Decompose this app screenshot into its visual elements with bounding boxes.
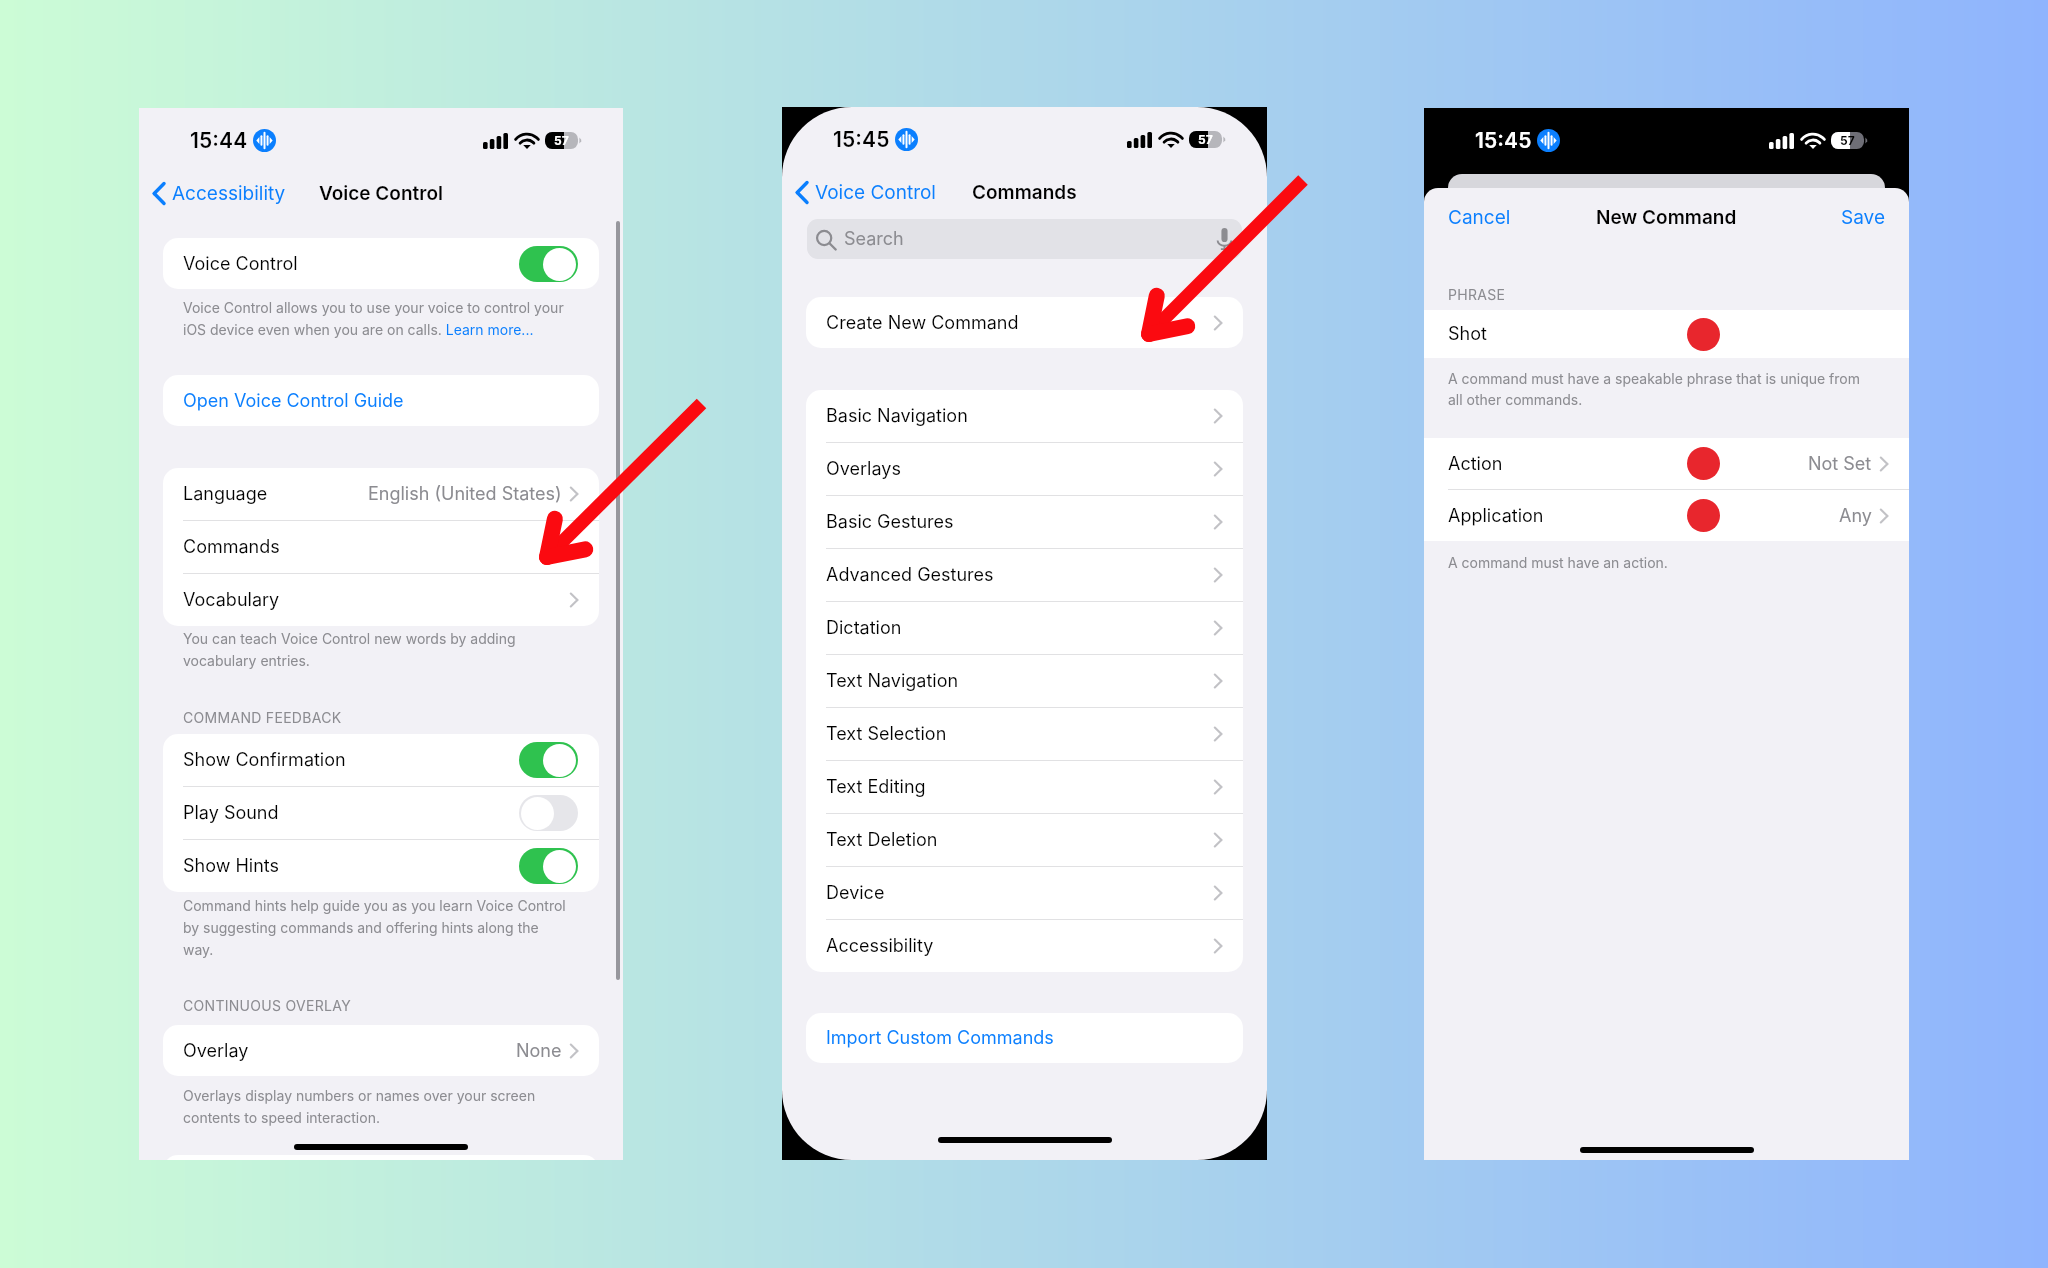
staticText: Voice Control <box>183 253 298 275</box>
staticText: Dictation <box>826 617 902 639</box>
staticText: Overlay <box>183 1040 249 1062</box>
staticText: Basic Navigation <box>826 405 968 427</box>
button[interactable]: Show Confirmation <box>163 734 599 786</box>
button[interactable]: Search commands <box>807 219 1242 259</box>
button[interactable]: Back to Accessibility <box>152 166 286 220</box>
staticText: Import Custom Commands <box>826 1027 1054 1049</box>
staticText: English (United States) <box>368 483 562 505</box>
button[interactable]: Create New Command <box>806 297 1243 348</box>
button[interactable]: On <box>519 246 578 282</box>
button[interactable]: On <box>519 742 578 778</box>
staticText: Accessibility <box>826 935 934 957</box>
staticText: Device <box>826 882 885 904</box>
button[interactable]: On <box>519 848 578 884</box>
staticText: You can teach Voice Control new words by… <box>183 630 579 669</box>
button[interactable]: Text Navigation <box>806 655 1243 707</box>
button[interactable]: Advanced Gestures <box>806 549 1243 601</box>
staticText: Text Editing <box>826 776 926 798</box>
staticText: Commands <box>972 181 1077 204</box>
staticText: Overlays <box>826 458 901 480</box>
staticText: Show Confirmation <box>183 749 346 771</box>
staticText: New Command <box>1596 206 1737 229</box>
button[interactable]: Commands <box>163 521 599 573</box>
staticText: Language <box>183 483 268 505</box>
staticText: Vocabulary <box>183 589 280 611</box>
staticText: Search <box>844 228 904 250</box>
staticText: Basic Gestures <box>826 511 954 533</box>
button[interactable]: Action <box>1424 438 1909 489</box>
staticText: None <box>516 1040 562 1062</box>
staticText: Application <box>1448 505 1544 527</box>
button[interactable]: Cancel <box>1448 206 1511 229</box>
staticText: Overlays display numbers or names over y… <box>183 1087 579 1126</box>
staticText: Voice Control <box>319 182 443 205</box>
staticText: 15:45 <box>833 127 890 152</box>
staticText: Any <box>1839 505 1872 527</box>
staticText: COMMAND FEEDBACK <box>183 709 342 726</box>
staticText: Play Sound <box>183 802 279 824</box>
button[interactable]: Overlay <box>163 1025 599 1076</box>
button[interactable]: Device <box>806 867 1243 919</box>
button[interactable]: Basic Navigation <box>806 390 1243 442</box>
button[interactable]: Basic Gestures <box>806 496 1243 548</box>
button[interactable]: Save <box>1841 206 1885 229</box>
staticText: Not Set <box>1808 453 1872 475</box>
staticText: A command must have a speakable phrase t… <box>1448 370 1866 408</box>
staticText: Text Navigation <box>826 670 959 692</box>
button[interactable]: Open Voice Control Guide <box>163 375 599 426</box>
button[interactable]: Vocabulary <box>163 574 599 626</box>
staticText: Voice Control <box>815 181 936 204</box>
staticText: Show Hints <box>183 855 280 877</box>
button[interactable]: Voice Control <box>163 238 599 289</box>
staticText: 15:44 <box>190 128 248 153</box>
staticText: Text Deletion <box>826 829 938 851</box>
button[interactable]: Import Custom Commands <box>806 1013 1243 1063</box>
button[interactable]: Show Hints <box>163 840 599 892</box>
button[interactable]: Text Selection <box>806 708 1243 760</box>
staticText: Cancel <box>1448 206 1511 229</box>
staticText: Commands <box>183 536 280 558</box>
staticText: Action <box>1448 453 1503 475</box>
staticText: Text Selection <box>826 723 947 745</box>
button[interactable]: Back to Voice Control <box>795 165 936 219</box>
staticText: 57 <box>554 133 569 148</box>
button[interactable]: Language <box>163 468 599 520</box>
staticText: Voice Control allows you to use your voi… <box>183 299 579 338</box>
button[interactable]: Application <box>1424 490 1909 541</box>
button[interactable]: Off <box>519 795 578 831</box>
staticText: Save <box>1841 206 1885 229</box>
button[interactable]: Dictation <box>806 602 1243 654</box>
staticText: PHRASE <box>1448 286 1506 303</box>
staticText: 57 <box>1840 133 1855 148</box>
staticText: Shot <box>1448 323 1487 345</box>
button[interactable]: Text Editing <box>806 761 1243 813</box>
button[interactable]: Shot <box>1424 310 1909 358</box>
staticText: A command must have an action. <box>1448 554 1668 571</box>
staticText: Advanced Gestures <box>826 564 994 586</box>
staticText: Accessibility <box>172 182 286 205</box>
button[interactable]: Text Deletion <box>806 814 1243 866</box>
staticText: Command hints help guide you as you lear… <box>183 897 568 958</box>
staticText: 15:45 <box>1475 128 1532 153</box>
button[interactable]: Overlays <box>806 443 1243 495</box>
button[interactable]: Accessibility <box>806 920 1243 972</box>
staticText: Create New Command <box>826 312 1019 334</box>
staticText: 57 <box>1198 132 1213 147</box>
staticText: Open Voice Control Guide <box>183 390 404 412</box>
button[interactable]: Play Sound <box>163 787 599 839</box>
staticText: CONTINUOUS OVERLAY <box>183 997 352 1014</box>
